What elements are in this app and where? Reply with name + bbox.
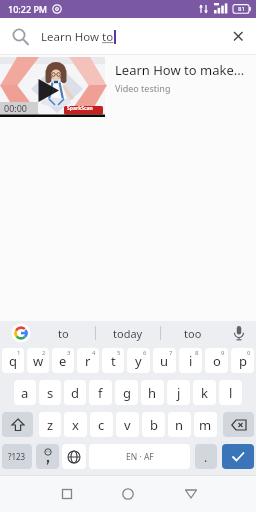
staticText: 1 <box>17 349 21 357</box>
staticText: to <box>58 326 69 341</box>
button[interactable]: ?123 <box>2 444 32 469</box>
button[interactable]: u <box>153 348 176 373</box>
staticText: a <box>21 384 29 402</box>
button[interactable]: Learn How to <box>0 18 256 55</box>
button[interactable]: r <box>77 348 99 373</box>
staticText: m <box>199 416 212 434</box>
button[interactable]: t <box>102 348 124 373</box>
staticText: 2 <box>42 349 46 357</box>
button[interactable]: m <box>194 412 217 437</box>
staticText: g <box>123 384 131 402</box>
button[interactable]: h <box>141 380 164 405</box>
button[interactable] <box>62 444 86 469</box>
button[interactable] <box>222 444 254 469</box>
button[interactable] <box>56 483 78 505</box>
staticText: EN · AF <box>126 451 154 463</box>
staticText: p <box>239 352 247 370</box>
staticText: 5 <box>117 349 121 357</box>
staticText: k <box>201 384 208 402</box>
staticText: 10:22 PM <box>8 3 48 15</box>
staticText: h <box>148 384 157 402</box>
staticText: 3 <box>67 349 71 357</box>
button[interactable]: w <box>27 348 49 373</box>
staticText: 00:00 <box>4 102 28 114</box>
staticText: n <box>175 416 184 434</box>
button[interactable]: n <box>168 412 191 437</box>
button[interactable] <box>223 412 254 437</box>
staticText: y <box>135 352 142 370</box>
button[interactable]: f <box>89 380 112 405</box>
staticText: 81 <box>238 5 245 13</box>
staticText: too <box>184 326 202 341</box>
button[interactable] <box>2 412 33 437</box>
staticText: 9 <box>221 349 225 357</box>
staticText: Learn How to <box>41 29 114 45</box>
staticText: today <box>113 326 143 341</box>
button[interactable]: too <box>161 321 225 345</box>
button[interactable]: b <box>142 412 165 437</box>
button[interactable]: EN · AF <box>89 444 190 469</box>
staticText: q <box>9 352 17 370</box>
button[interactable] <box>220 18 256 55</box>
staticText: Learn How to make... <box>115 61 245 79</box>
staticText: z <box>47 416 54 434</box>
button[interactable]: j <box>167 380 190 405</box>
staticText: u <box>160 352 169 370</box>
staticText: s <box>47 384 54 402</box>
button[interactable]: z <box>39 412 61 437</box>
button[interactable]: k <box>193 380 216 405</box>
button[interactable]: o <box>205 348 228 373</box>
button[interactable] <box>11 323 31 343</box>
staticText: j <box>177 384 181 402</box>
button[interactable]: q <box>2 348 24 373</box>
button[interactable]: d <box>64 380 86 405</box>
button[interactable] <box>180 483 202 505</box>
staticText: 8 <box>195 349 199 357</box>
staticText: 7 <box>169 349 173 357</box>
staticText: w <box>33 352 44 370</box>
button[interactable]: x <box>64 412 87 437</box>
staticText: v <box>124 416 131 434</box>
button[interactable]: i <box>179 348 202 373</box>
staticText: e <box>59 352 67 370</box>
button[interactable]: 00:00 <box>0 57 256 117</box>
staticText: SparkScan <box>67 105 93 112</box>
staticText: 6 <box>143 349 147 357</box>
button[interactable]: s <box>39 380 61 405</box>
staticText: o <box>213 352 221 370</box>
button[interactable]: l <box>219 380 242 405</box>
staticText: l <box>229 384 233 402</box>
staticText: 4 <box>92 349 96 357</box>
button[interactable]: today <box>96 321 160 345</box>
staticText: b <box>150 416 158 434</box>
button[interactable]: e <box>52 348 74 373</box>
staticText: Video testing <box>115 82 171 94</box>
button[interactable]: y <box>127 348 150 373</box>
button[interactable]: p <box>231 348 254 373</box>
button[interactable]: c <box>90 412 113 437</box>
staticText: i <box>189 352 193 370</box>
staticText: r <box>85 352 91 370</box>
staticText: . <box>204 449 208 465</box>
staticText: 0 <box>247 349 251 357</box>
button[interactable]: . <box>195 444 217 469</box>
staticText: t <box>111 352 116 370</box>
staticText: c <box>98 416 105 434</box>
button[interactable]: g <box>115 380 138 405</box>
button[interactable] <box>36 444 59 469</box>
staticText: d <box>71 384 79 402</box>
button[interactable]: v <box>116 412 139 437</box>
button[interactable]: a <box>14 380 36 405</box>
staticText: ?123 <box>8 451 26 462</box>
staticText: x <box>72 416 79 434</box>
staticText: f <box>98 384 103 402</box>
button[interactable] <box>232 324 246 342</box>
button[interactable]: to <box>31 321 95 345</box>
button[interactable] <box>117 483 139 505</box>
